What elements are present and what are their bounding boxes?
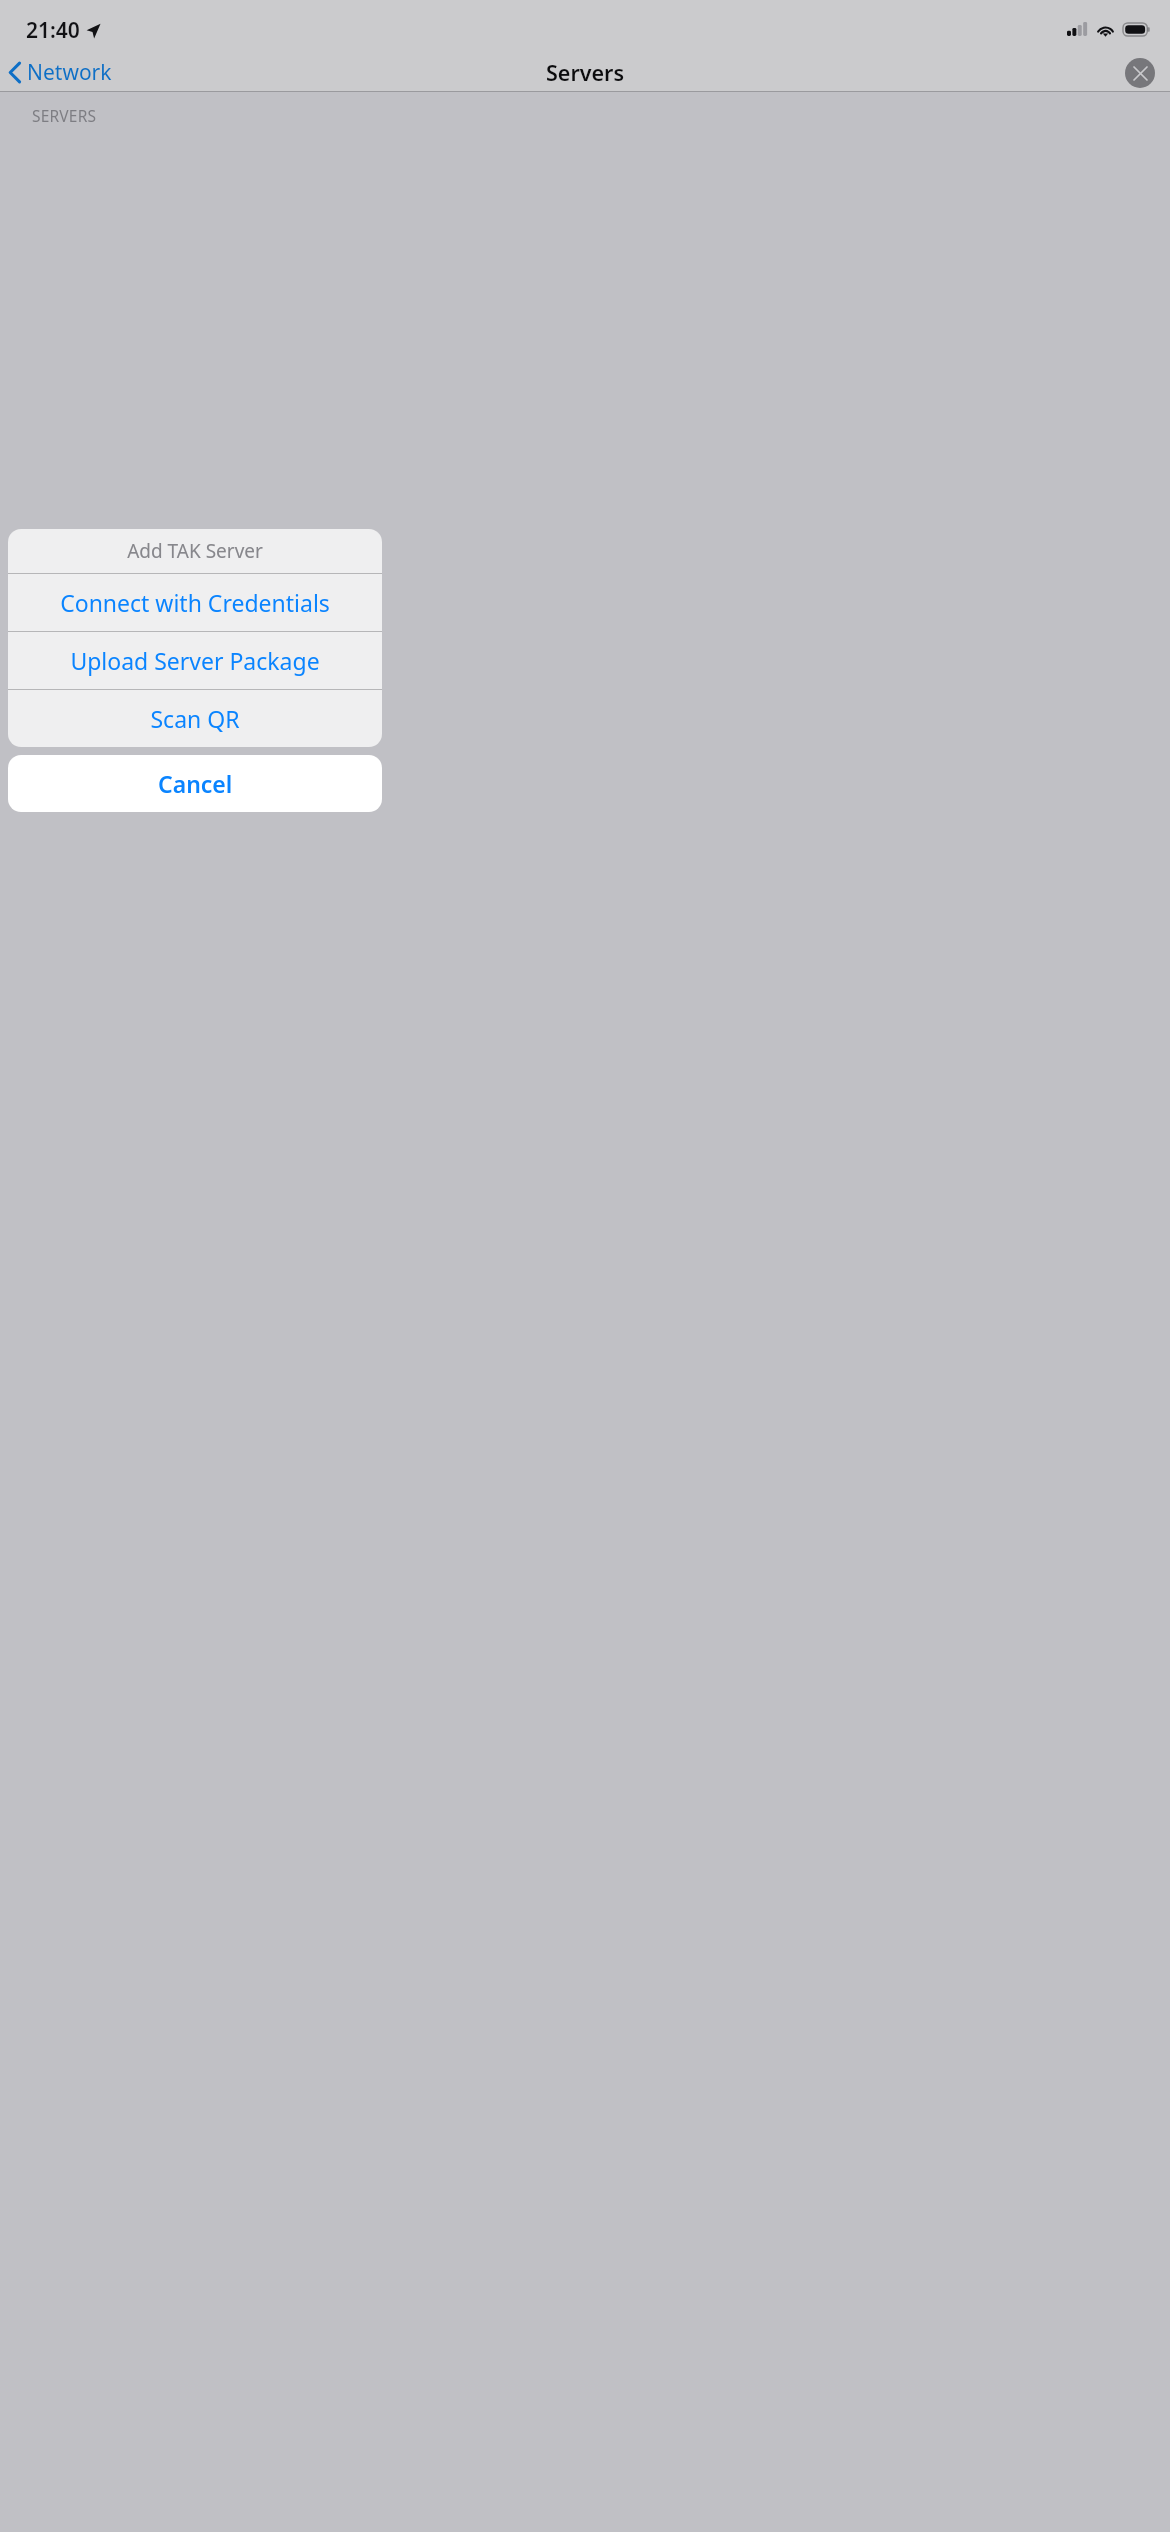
staticText: Upload Server Package: [70, 645, 320, 676]
staticText: 21:40: [26, 16, 80, 45]
staticText: Cancel: [158, 768, 233, 799]
staticText: Network: [27, 58, 112, 87]
staticText: SERVERS: [32, 105, 97, 126]
button[interactable]: Connect with Credentials: [8, 574, 382, 631]
button[interactable]: Close: [1125, 58, 1155, 88]
button[interactable]: Cancel: [8, 755, 382, 812]
button[interactable]: Scan QR: [8, 690, 382, 747]
staticText: Servers: [546, 58, 625, 87]
staticText: Scan QR: [150, 703, 240, 734]
staticText: Add TAK Server: [127, 538, 263, 564]
staticText: Connect with Credentials: [60, 587, 330, 618]
button[interactable]: Upload Server Package: [8, 632, 382, 689]
button[interactable]: Network: [0, 54, 122, 91]
